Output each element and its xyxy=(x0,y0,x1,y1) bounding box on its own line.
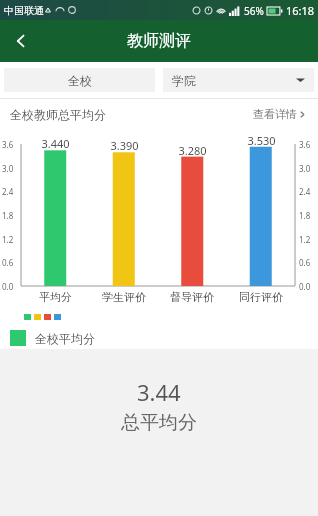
staticText: 查看详情 xyxy=(253,107,297,121)
staticText: 全校 xyxy=(68,73,92,88)
staticText: 1.8 xyxy=(299,210,311,221)
staticText: 3.0 xyxy=(2,163,14,174)
staticText: 56% xyxy=(244,4,264,18)
staticText: 3.44 xyxy=(137,377,181,407)
button[interactable]: Back xyxy=(0,20,42,62)
staticText: 督导评价 xyxy=(170,290,214,304)
staticText: 1.8 xyxy=(2,210,14,221)
staticText: 3.6 xyxy=(299,139,311,150)
button[interactable]: 学院 xyxy=(163,68,314,92)
staticText: 平均分 xyxy=(39,290,72,304)
staticText: 16:18 xyxy=(286,3,315,18)
staticText: 3.390 xyxy=(110,138,139,153)
staticText: 0.6 xyxy=(2,257,14,268)
staticText: 3.440 xyxy=(41,136,70,151)
staticText: 0.0 xyxy=(299,281,311,292)
staticText: 1.2 xyxy=(2,234,14,245)
staticText: 3.0 xyxy=(299,163,311,174)
staticText: 全校教师总平均分 xyxy=(10,107,106,122)
staticText: 总平均分 xyxy=(121,411,197,435)
staticText: 同行评价 xyxy=(239,290,283,304)
staticText: 教师测评 xyxy=(127,31,191,51)
staticText: 3.280 xyxy=(178,143,207,158)
staticText: 0.6 xyxy=(299,257,311,268)
staticText: 学生评价 xyxy=(102,290,146,304)
staticText: 0.0 xyxy=(2,281,14,292)
staticText: 3.6 xyxy=(2,139,14,150)
staticText: 2.4 xyxy=(299,186,311,197)
button[interactable]: 全校 xyxy=(4,68,155,92)
staticText: 中国联通 xyxy=(4,4,44,17)
button[interactable]: 查看详情 xyxy=(251,103,308,125)
staticText: 学院 xyxy=(172,73,196,88)
staticText: 1.2 xyxy=(299,234,311,245)
staticText: 3.530 xyxy=(247,133,276,148)
staticText: 2.4 xyxy=(2,186,14,197)
staticText: 全校平均分 xyxy=(35,331,95,346)
